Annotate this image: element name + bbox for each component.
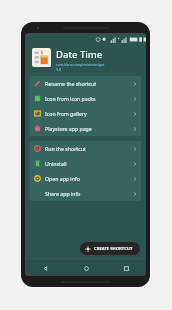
- staticText: Share app info: [45, 190, 133, 197]
- button[interactable]: CREATE SHORTCUT: [80, 242, 140, 255]
- staticText: 1.3: [56, 67, 61, 72]
- staticText: Open app info: [45, 175, 133, 182]
- staticText: Playstore app page: [45, 125, 133, 132]
- button[interactable]: Recent apps: [106, 260, 146, 276]
- button[interactable]: Playstore app page: [30, 121, 141, 136]
- button[interactable]: Date Time: [32, 48, 139, 72]
- staticText: Uninstall: [45, 160, 133, 167]
- staticText: Rename the shortcut: [45, 80, 133, 87]
- staticText: Date Time: [56, 48, 103, 61]
- staticText: Run the shortcut: [45, 145, 133, 152]
- button[interactable]: Back: [25, 260, 66, 276]
- button[interactable]: Home: [66, 260, 106, 276]
- button[interactable]: Run the shortcut: [30, 141, 141, 156]
- staticText: CREATE SHORTCUT: [94, 246, 133, 252]
- staticText: com.blaze.simpledatewidget: [56, 62, 105, 67]
- button[interactable]: Uninstall: [30, 156, 141, 171]
- button[interactable]: Icon from icon packs: [30, 91, 141, 106]
- button[interactable]: Share app info: [30, 186, 141, 201]
- staticText: Icon from icon packs: [45, 95, 133, 102]
- button[interactable]: Open app info: [30, 171, 141, 186]
- button[interactable]: Rename the shortcut: [30, 76, 141, 91]
- staticText: Icon from gallery: [45, 110, 133, 117]
- button[interactable]: Icon from gallery: [30, 106, 141, 121]
